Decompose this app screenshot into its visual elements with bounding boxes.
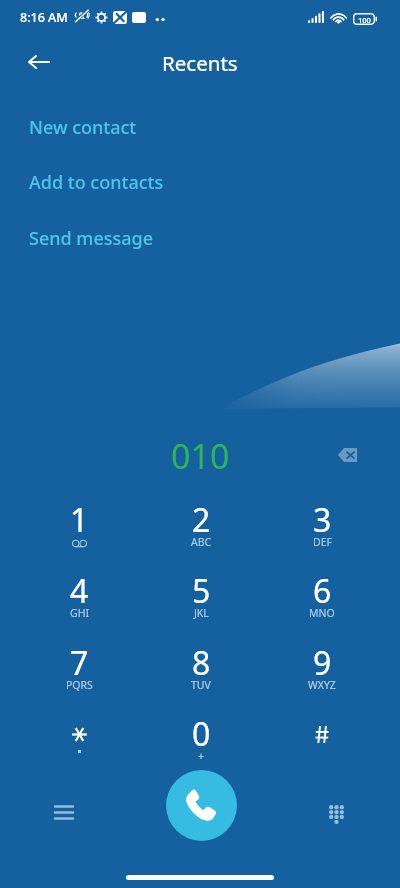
staticText: 6	[313, 569, 332, 613]
staticText: Recents	[162, 49, 238, 77]
button[interactable]	[39, 709, 119, 775]
staticText: PQRS	[66, 678, 93, 692]
button[interactable]: Backspace	[324, 432, 370, 478]
staticText: 8:16 AM	[20, 9, 68, 26]
staticText: Send message	[29, 226, 154, 251]
button[interactable]: Dialpad	[314, 792, 358, 836]
staticText: 3	[313, 498, 332, 542]
button[interactable]: 9	[282, 638, 362, 704]
staticText: GHI	[70, 606, 89, 620]
staticText: JKL	[194, 606, 209, 620]
staticText: 9	[313, 641, 332, 685]
staticText: 2	[192, 498, 211, 542]
button[interactable]: Back	[18, 42, 58, 82]
button[interactable]: Call history menu	[42, 790, 86, 834]
staticText: New contact	[29, 115, 137, 140]
staticText: 010	[171, 433, 230, 469]
button[interactable]: 7	[39, 638, 119, 704]
staticText: 100	[358, 15, 371, 25]
button[interactable]: Add to contacts	[0, 163, 400, 201]
button[interactable]: New contact	[0, 108, 400, 146]
staticText: 0	[192, 712, 211, 756]
staticText: 5	[192, 569, 211, 613]
staticText: 1	[70, 498, 89, 542]
staticText: 8	[192, 641, 211, 685]
button[interactable]: 3	[282, 495, 362, 561]
button[interactable]: 2	[161, 495, 241, 561]
button[interactable]	[282, 709, 362, 775]
staticText: TUV	[191, 678, 211, 692]
button[interactable]: 4	[39, 566, 119, 632]
button[interactable]: 6	[282, 566, 362, 632]
button[interactable]: 0	[161, 709, 241, 775]
staticText: ABC	[191, 535, 212, 549]
staticText: Add to contacts	[29, 170, 164, 195]
button[interactable]: 8	[161, 638, 241, 704]
button[interactable]: Call	[166, 770, 237, 841]
button[interactable]: 1	[39, 495, 119, 561]
staticText: WXYZ	[308, 678, 336, 692]
staticText: 7	[70, 641, 89, 685]
button[interactable]: Send message	[0, 219, 400, 257]
staticText: +	[198, 749, 205, 763]
staticText: DEF	[313, 535, 332, 549]
staticText: MNO	[309, 606, 335, 620]
button[interactable]: 5	[161, 566, 241, 632]
staticText: 4	[70, 569, 89, 613]
